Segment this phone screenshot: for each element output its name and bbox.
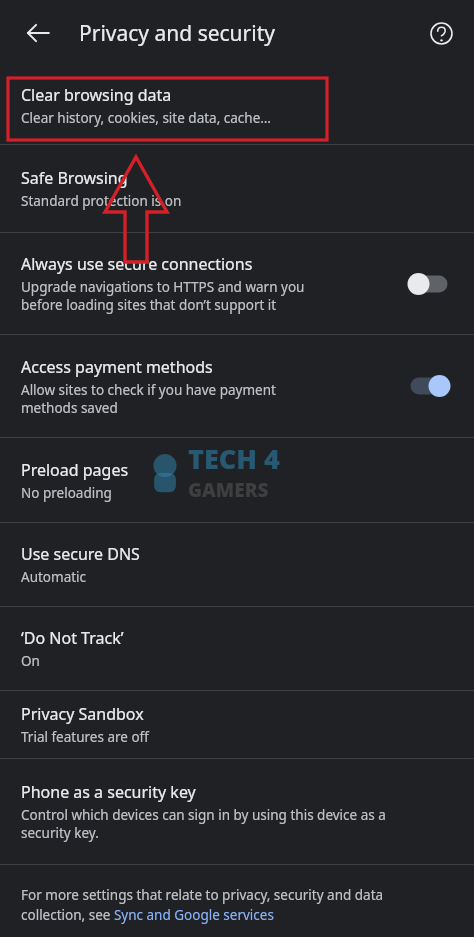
staticText: Trial features are off — [21, 728, 149, 746]
staticText: TECH 4 — [188, 440, 280, 477]
staticText: Preload pages — [21, 459, 129, 481]
button[interactable]: Privacy Sandbox — [0, 691, 474, 758]
staticText: Clear browsing data — [21, 84, 172, 106]
staticText: Automatic — [21, 568, 87, 586]
button[interactable]: Use secure DNS — [0, 523, 474, 606]
button[interactable]: Always use secure connections — [0, 233, 474, 334]
staticText: Control which devices can sign in by usi… — [21, 806, 386, 842]
staticText: GAMERS — [188, 477, 269, 503]
staticText: Access payment methods — [21, 356, 213, 378]
staticText: Clear history, cookies, site data, cache… — [21, 109, 271, 127]
button[interactable]: Preload pages — [0, 438, 474, 522]
staticText: Always use secure connections — [21, 253, 253, 275]
staticText: On — [21, 652, 40, 670]
staticText: Safe Browsing — [21, 167, 128, 189]
staticText: Standard protection is on — [21, 192, 182, 210]
staticText: Use secure DNS — [21, 543, 140, 565]
staticText: Privacy Sandbox — [21, 703, 144, 725]
staticText: Privacy and security — [79, 19, 275, 48]
button[interactable]: Toggle off — [402, 267, 456, 301]
button[interactable]: Clear browsing data — [21, 84, 271, 127]
staticText: For more settings that relate to privacy… — [21, 886, 384, 924]
staticText: No preloading — [21, 484, 112, 502]
button[interactable]: Safe Browsing — [0, 145, 474, 232]
button[interactable]: Phone as a security key — [0, 759, 474, 864]
staticText: Phone as a security key — [21, 781, 196, 803]
button[interactable]: Access payment methods — [0, 335, 474, 437]
button[interactable]: ‘Do Not Track’ — [0, 607, 474, 690]
staticText: Upgrade navigations to HTTPS and warn yo… — [21, 278, 305, 314]
staticText: ‘Do Not Track’ — [21, 627, 124, 649]
button[interactable]: Back — [14, 9, 62, 57]
button[interactable]: Toggle on — [402, 369, 456, 403]
button[interactable]: Help — [418, 10, 464, 56]
staticText: Allow sites to check if you have payment… — [21, 381, 276, 417]
